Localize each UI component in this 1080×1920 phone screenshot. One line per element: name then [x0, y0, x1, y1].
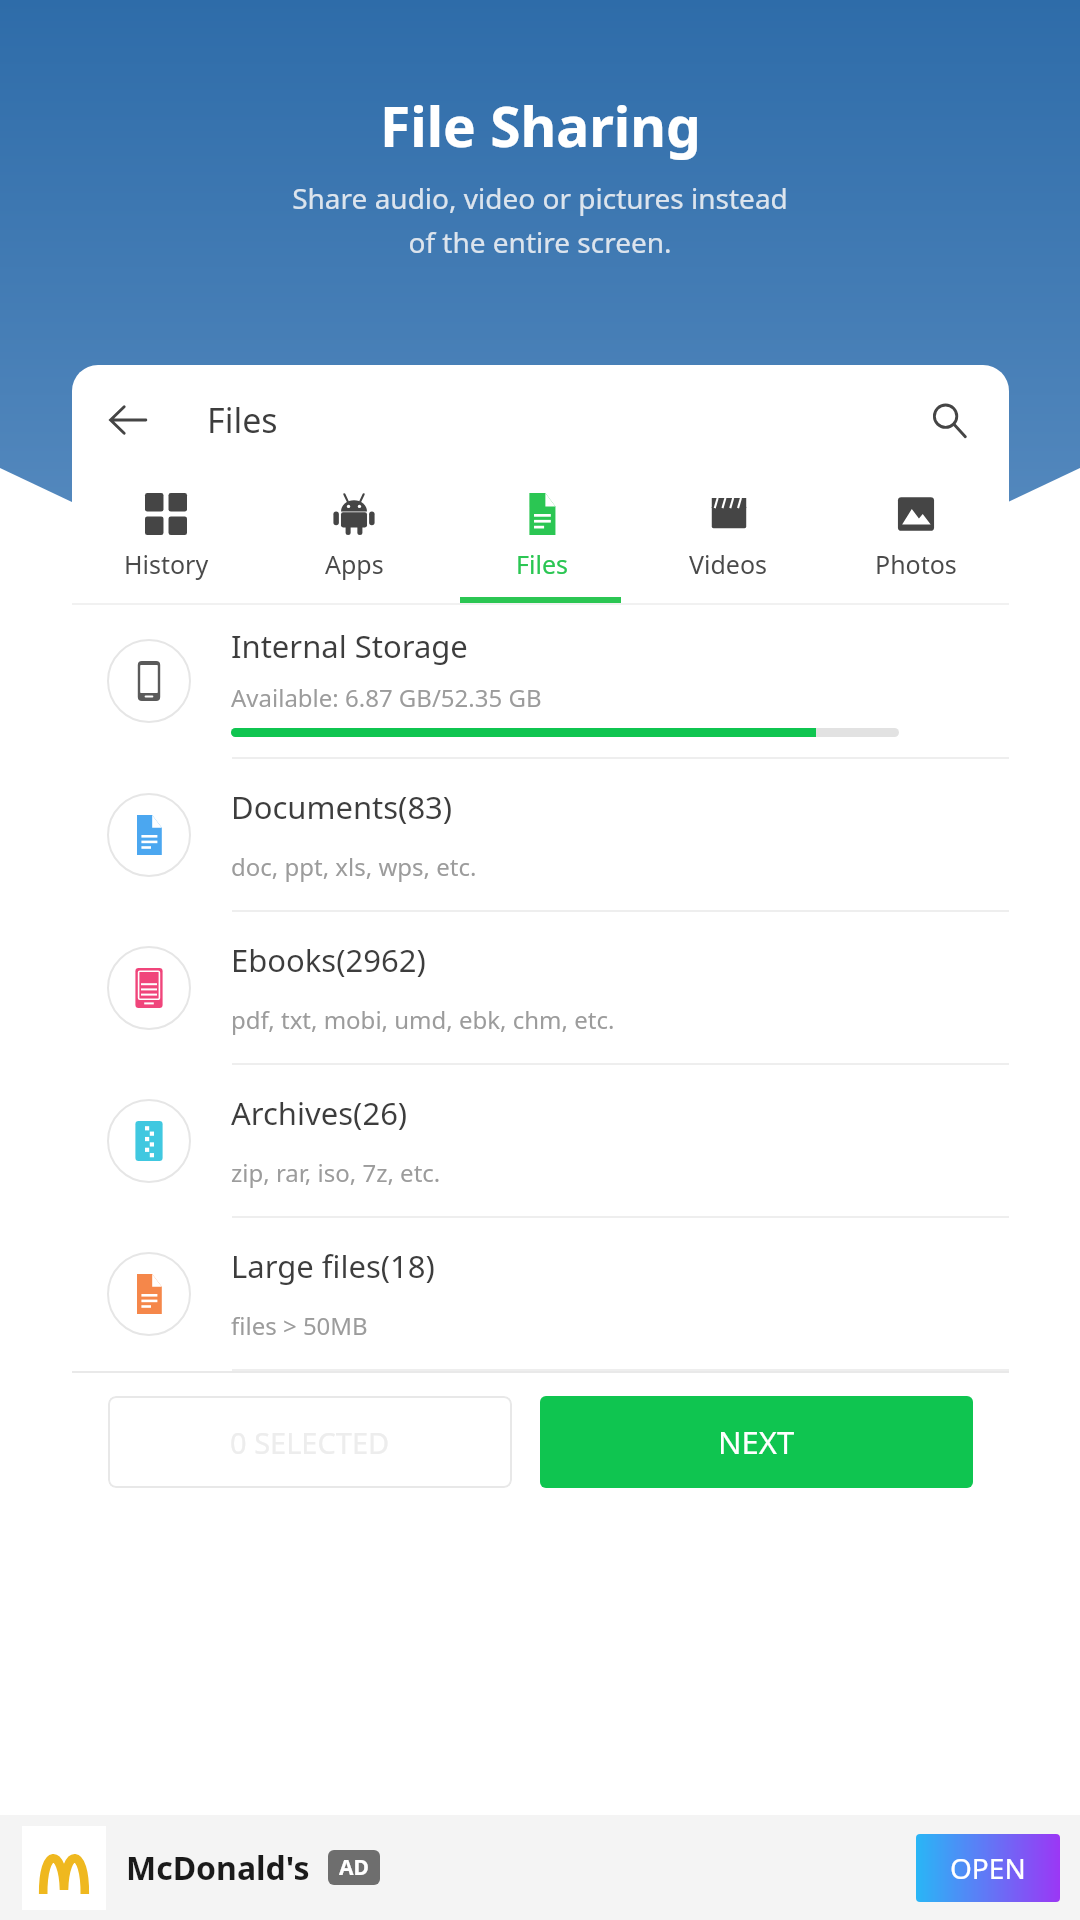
button[interactable]: Photos [822, 475, 1009, 603]
staticText: Documents(83) [231, 786, 453, 828]
staticText: Apps [325, 547, 384, 581]
button[interactable]: Back [98, 390, 158, 450]
button[interactable]: NEXT [540, 1396, 973, 1488]
staticText: pdf, txt, mobi, umd, ebk, chm, etc. [231, 1003, 615, 1036]
button[interactable]: Archives(26) [72, 1065, 1009, 1216]
staticText: Share audio, video or pictures instead o… [0, 179, 1080, 261]
button[interactable]: Documents(83) [72, 759, 1009, 910]
button[interactable]: Search [919, 390, 979, 450]
button[interactable]: Ebooks(2962) [72, 912, 1009, 1063]
staticText: McDonald's [126, 1846, 310, 1890]
button[interactable]: OPEN [916, 1834, 1060, 1902]
staticText: Ebooks(2962) [231, 939, 426, 981]
button[interactable]: 0 SELECTED [108, 1396, 512, 1488]
button[interactable]: Internal Storage [72, 605, 1009, 757]
staticText: History [124, 547, 209, 581]
staticText: Files [516, 547, 568, 581]
button[interactable]: McDonald's [0, 1815, 1080, 1920]
button[interactable]: History [72, 475, 260, 603]
staticText: File Sharing [380, 88, 701, 163]
staticText: Videos [689, 547, 768, 581]
staticText: files > 50MB [231, 1309, 368, 1342]
button[interactable]: Videos [635, 475, 822, 603]
staticText: zip, rar, iso, 7z, etc. [231, 1156, 441, 1189]
staticText: 0 SELECTED [230, 1423, 390, 1462]
button[interactable]: Large files(18) [72, 1218, 1009, 1369]
button[interactable]: Apps [260, 475, 448, 603]
staticText: Available: 6.87 GB/52.35 GB [231, 681, 542, 714]
staticText: OPEN [950, 1849, 1026, 1887]
button[interactable]: Files [448, 475, 635, 603]
staticText: Photos [875, 547, 957, 581]
staticText: Internal Storage [231, 625, 468, 667]
staticText: Archives(26) [231, 1092, 408, 1134]
staticText: NEXT [718, 1421, 795, 1463]
staticText: doc, ppt, xls, wps, etc. [231, 850, 477, 883]
staticText: Large files(18) [231, 1245, 435, 1287]
staticText: Files [207, 397, 278, 443]
staticText: AD [339, 1853, 369, 1882]
